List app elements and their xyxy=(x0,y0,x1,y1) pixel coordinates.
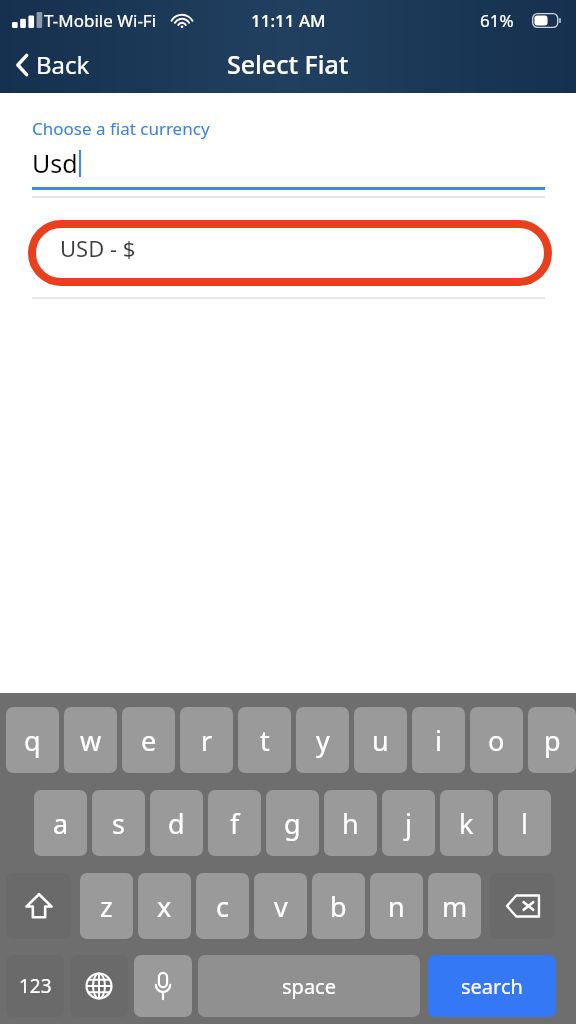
button[interactable]: o xyxy=(470,707,523,773)
staticText: c xyxy=(216,888,229,925)
button[interactable]: w xyxy=(64,707,117,773)
staticText: o xyxy=(488,722,505,759)
button[interactable]: d xyxy=(150,790,203,856)
staticText: e xyxy=(141,722,157,759)
button[interactable]: y xyxy=(296,707,349,773)
staticText: search xyxy=(461,973,523,1000)
button[interactable]: Dictation xyxy=(134,955,192,1017)
button[interactable]: g xyxy=(266,790,319,856)
staticText: n xyxy=(388,888,405,925)
button[interactable]: u xyxy=(354,707,407,773)
staticText: x xyxy=(157,888,172,925)
staticText: b xyxy=(330,888,347,925)
staticText: a xyxy=(53,805,69,842)
button[interactable]: f xyxy=(208,790,261,856)
button[interactable]: Back xyxy=(10,44,96,85)
staticText: u xyxy=(372,722,389,759)
staticText: k xyxy=(459,805,474,842)
button[interactable]: v xyxy=(254,873,307,939)
staticText: T-Mobile Wi-Fi xyxy=(44,9,157,32)
button[interactable]: search xyxy=(428,955,556,1017)
button[interactable]: Backspace xyxy=(490,873,555,939)
staticText: 61% xyxy=(480,9,514,32)
button[interactable]: k xyxy=(440,790,493,856)
button[interactable]: e xyxy=(122,707,175,773)
staticText: j xyxy=(405,805,412,842)
staticText: Select Fiat xyxy=(227,47,349,81)
button[interactable]: 123 xyxy=(6,955,64,1017)
button[interactable]: c xyxy=(196,873,249,939)
staticText: 11:11 AM xyxy=(251,9,326,32)
button[interactable]: t xyxy=(238,707,291,773)
button[interactable]: i xyxy=(412,707,465,773)
staticText: space xyxy=(282,973,336,1000)
staticText: f xyxy=(230,805,240,842)
button[interactable]: n xyxy=(370,873,423,939)
button[interactable]: Change keyboard xyxy=(70,955,128,1017)
staticText: Choose a fiat currency xyxy=(32,117,210,140)
staticText: USD - $ xyxy=(60,233,136,263)
staticText: Usd xyxy=(32,146,78,180)
staticText: p xyxy=(544,722,561,759)
button[interactable]: Shift xyxy=(6,873,71,939)
button[interactable]: q xyxy=(6,707,59,773)
button[interactable]: USD - $ xyxy=(0,198,576,297)
button[interactable]: j xyxy=(382,790,435,856)
button[interactable]: z xyxy=(80,873,133,939)
button[interactable]: l xyxy=(498,790,551,856)
button[interactable]: x xyxy=(138,873,191,939)
staticText: l xyxy=(521,805,528,842)
button[interactable]: Usd xyxy=(32,146,545,180)
button[interactable]: space xyxy=(198,955,420,1017)
staticText: d xyxy=(168,805,185,842)
staticText: s xyxy=(112,805,125,842)
staticText: v xyxy=(274,888,288,925)
button[interactable]: r xyxy=(180,707,233,773)
staticText: h xyxy=(342,805,359,842)
staticText: r xyxy=(201,722,213,759)
staticText: Back xyxy=(36,48,90,81)
staticText: 123 xyxy=(19,973,52,999)
button[interactable]: s xyxy=(92,790,145,856)
button[interactable]: m xyxy=(428,873,481,939)
staticText: z xyxy=(100,888,113,925)
staticText: g xyxy=(284,805,301,842)
staticText: i xyxy=(435,722,442,759)
button[interactable]: h xyxy=(324,790,377,856)
button[interactable]: p xyxy=(528,707,576,773)
staticText: w xyxy=(80,722,102,759)
staticText: q xyxy=(24,722,41,759)
staticText: y xyxy=(316,722,330,759)
button[interactable]: b xyxy=(312,873,365,939)
button[interactable]: a xyxy=(34,790,87,856)
staticText: m xyxy=(442,888,468,925)
staticText: t xyxy=(260,722,270,759)
